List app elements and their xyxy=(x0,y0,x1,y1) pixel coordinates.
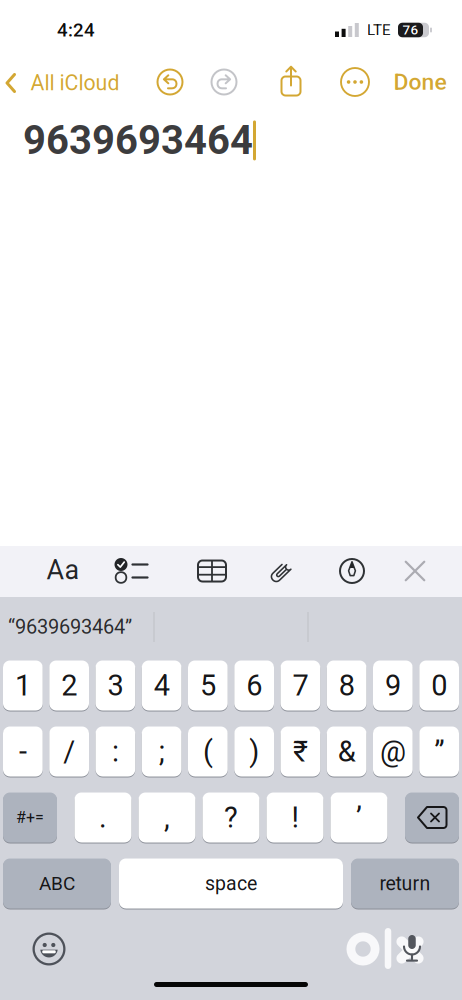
staticText: : xyxy=(112,734,119,768)
staticText: Done xyxy=(393,69,446,95)
button[interactable]: @ xyxy=(373,726,413,776)
button[interactable]: 1 xyxy=(3,660,43,710)
staticText: Aa xyxy=(46,554,79,586)
staticText: ! xyxy=(291,800,298,834)
staticText: 4 xyxy=(154,668,170,702)
button[interactable]: ; xyxy=(142,726,182,776)
button[interactable]: Done xyxy=(393,69,446,95)
button[interactable]: 5 xyxy=(188,660,228,710)
button[interactable]: Dictation xyxy=(401,933,423,965)
button[interactable]: : xyxy=(95,726,135,776)
button[interactable]: Emoji xyxy=(32,932,66,966)
staticText: 9639693464 xyxy=(23,117,253,164)
button[interactable]: All iCloud xyxy=(4,70,119,95)
staticText: ₹ xyxy=(293,734,308,768)
button[interactable]: Redo xyxy=(210,68,238,96)
button[interactable]: More xyxy=(341,68,369,96)
staticText: space xyxy=(205,872,257,895)
staticText: 2 xyxy=(61,668,77,702)
button[interactable]: space xyxy=(119,858,343,908)
button[interactable]: 9 xyxy=(373,660,413,710)
button[interactable]: ” xyxy=(419,726,459,776)
button[interactable]: Checklist xyxy=(113,558,149,584)
staticText: 4:24 xyxy=(57,19,95,41)
button[interactable]: / xyxy=(49,726,89,776)
staticText: return xyxy=(379,872,430,895)
staticText: @ xyxy=(380,734,406,768)
staticText: “9639693464” xyxy=(8,615,132,639)
button[interactable]: #+= xyxy=(3,792,57,842)
staticText: - xyxy=(19,734,27,768)
staticText: 76 xyxy=(402,22,418,38)
staticText: , xyxy=(164,800,170,834)
staticText: . xyxy=(99,800,107,834)
staticText: / xyxy=(63,734,75,768)
staticText: ? xyxy=(224,800,238,834)
button[interactable]: Share xyxy=(279,65,303,96)
button[interactable]: Format xyxy=(46,554,79,586)
button[interactable]: Delete xyxy=(405,792,459,842)
staticText: #+= xyxy=(16,808,44,827)
button[interactable]: ( xyxy=(188,726,228,776)
staticText: ” xyxy=(434,734,444,768)
button[interactable]: ? xyxy=(202,792,259,842)
staticText: 5 xyxy=(200,668,216,702)
staticText: All iCloud xyxy=(30,70,119,95)
button[interactable]: return xyxy=(351,858,459,908)
staticText: 6 xyxy=(246,668,262,702)
staticText: ABC xyxy=(39,872,75,895)
staticText: ’ xyxy=(356,800,362,834)
button[interactable]: 3 xyxy=(95,660,135,710)
button[interactable]: “9639693464” xyxy=(8,600,154,654)
staticText: ; xyxy=(159,734,165,768)
staticText: 8 xyxy=(339,668,355,702)
staticText: 9 xyxy=(385,668,401,702)
button[interactable]: 0 xyxy=(419,660,459,710)
button[interactable]: Table xyxy=(197,559,227,582)
button[interactable]: ABC xyxy=(3,858,111,908)
staticText: LTE xyxy=(367,21,391,39)
button[interactable]: ) xyxy=(234,726,274,776)
staticText: 1 xyxy=(15,668,31,702)
staticText: ) xyxy=(249,734,259,768)
staticText: & xyxy=(338,734,356,768)
button[interactable]: 2 xyxy=(49,660,89,710)
button[interactable]: Undo xyxy=(156,68,184,96)
button[interactable]: Dismiss keyboard xyxy=(404,560,426,582)
button[interactable]: 7 xyxy=(280,660,320,710)
button[interactable]: - xyxy=(3,726,43,776)
button[interactable]: Attach xyxy=(268,557,296,585)
button[interactable]: . xyxy=(74,792,131,842)
button[interactable]: 8 xyxy=(327,660,367,710)
button[interactable]: Markup xyxy=(339,558,365,584)
button[interactable]: ₹ xyxy=(280,726,320,776)
staticText: 0 xyxy=(431,668,447,702)
button[interactable]: ’ xyxy=(330,792,387,842)
button[interactable]: 6 xyxy=(234,660,274,710)
staticText: 3 xyxy=(107,668,123,702)
button[interactable]: , xyxy=(138,792,195,842)
button[interactable]: 4 xyxy=(142,660,182,710)
staticText: 7 xyxy=(292,668,308,702)
button[interactable]: ! xyxy=(266,792,323,842)
button[interactable]: & xyxy=(327,726,367,776)
staticText: ( xyxy=(203,734,213,768)
